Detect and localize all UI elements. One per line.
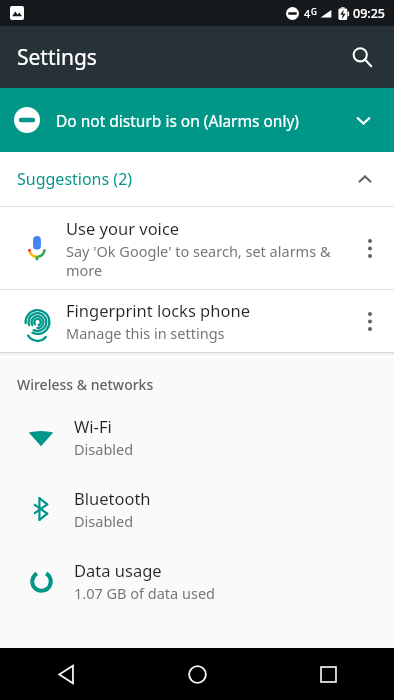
button[interactable]: Collapse suggestions (348, 162, 382, 196)
staticText: Wireless & networks (17, 375, 154, 394)
button[interactable]: More options (350, 301, 390, 341)
staticText: Wi-Fi (74, 415, 112, 437)
staticText: Fingerprint locks phone (66, 299, 250, 321)
button[interactable]: Suggestions (2) (0, 152, 394, 206)
staticText: 4 (304, 6, 311, 21)
staticText: Data usage (74, 559, 162, 581)
button[interactable]: Data usage (0, 545, 394, 617)
staticText: G (311, 6, 317, 17)
staticText: Disabled (74, 439, 134, 459)
staticText: 1.07 GB of data used (74, 583, 216, 603)
staticText: Bluetooth (74, 487, 151, 509)
staticText: Settings (17, 43, 97, 72)
staticText: Suggestions (2) (17, 168, 348, 190)
button[interactable]: Fingerprint locks phone (0, 290, 394, 352)
button[interactable]: Recent apps (263, 648, 394, 700)
button[interactable]: More options (350, 228, 390, 268)
staticText: 09:25 (353, 5, 386, 22)
staticText: Do not disturb is on (Alarms only) (56, 110, 336, 131)
button[interactable]: Use your voice (0, 207, 394, 289)
staticText: Use your voice (66, 217, 180, 239)
button[interactable]: Home (132, 648, 263, 700)
button[interactable]: Back (0, 648, 132, 700)
button[interactable]: Wi-Fi (0, 401, 394, 473)
staticText: Disabled (74, 511, 134, 531)
button[interactable]: Search (338, 33, 386, 81)
staticText: Say 'Ok Google' to search, set alarms & … (66, 241, 344, 280)
button[interactable]: Bluetooth (0, 473, 394, 545)
button[interactable]: Do not disturb is on (Alarms only) (0, 88, 394, 152)
staticText: Manage this in settings (66, 323, 225, 343)
button[interactable]: Expand do not disturb (346, 103, 380, 137)
